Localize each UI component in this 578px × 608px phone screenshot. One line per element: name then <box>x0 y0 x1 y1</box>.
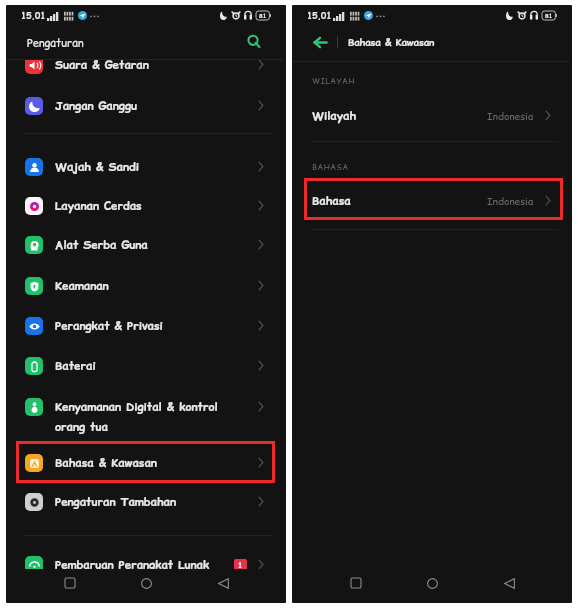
button[interactable]: Pembaruan Perangkat Lunak <box>6 545 286 569</box>
button[interactable]: Search <box>242 31 264 53</box>
button[interactable]: Back <box>310 32 330 52</box>
button[interactable]: Baterai <box>6 346 286 386</box>
button[interactable]: Jangan Ganggu <box>6 86 286 126</box>
staticText: Bahasa & Kawasan <box>55 455 157 471</box>
button[interactable]: Recent apps <box>57 570 83 596</box>
staticText: Pembaruan Perangkat Lunak <box>55 557 210 569</box>
button[interactable]: Suara & Getaran <box>6 60 286 85</box>
staticText: Kenyamanan Digital & kontrol orang tua <box>55 399 218 435</box>
staticText: Indonesia <box>487 194 534 208</box>
button[interactable]: Home <box>419 570 445 596</box>
button[interactable]: Bahasa & Kawasan <box>6 443 286 483</box>
staticText: WILAYAH <box>312 76 355 87</box>
button[interactable]: Home <box>133 570 159 596</box>
button[interactable]: Layanan Cerdas <box>6 186 286 226</box>
staticText: 15.01 <box>307 10 332 22</box>
staticText: Baterai <box>55 358 96 374</box>
staticText: Bahasa & Kawasan <box>348 35 435 49</box>
staticText: 15.01 <box>21 10 46 22</box>
staticText: Jangan Ganggu <box>55 98 137 114</box>
button[interactable]: Wajah & Sandi <box>6 147 286 187</box>
staticText: Wajah & Sandi <box>55 159 139 175</box>
button[interactable]: Pengaturan Tambahan <box>6 482 286 522</box>
button[interactable]: Wilayah <box>292 95 572 135</box>
staticText: Perangkat & Privasi <box>55 318 163 334</box>
button[interactable]: Back <box>496 570 522 596</box>
staticText: 81 <box>259 12 267 20</box>
button[interactable]: Kenyamanan Digital & kontrol orang tua <box>6 397 286 455</box>
staticText: Wilayah <box>312 108 357 124</box>
staticText: Suara & Getaran <box>55 60 149 73</box>
staticText: BAHASA <box>312 162 349 173</box>
button[interactable]: Back <box>210 570 236 596</box>
staticText: Indonesia <box>487 109 534 123</box>
button[interactable]: Perangkat & Privasi <box>6 306 286 346</box>
button[interactable]: Alat Serba Guna <box>6 225 286 265</box>
button[interactable]: Recent apps <box>343 570 369 596</box>
staticText: Pengaturan Tambahan <box>55 494 176 510</box>
staticText: 1 <box>238 561 243 569</box>
staticText: Alat Serba Guna <box>55 237 148 253</box>
staticText: 81 <box>545 12 553 20</box>
staticText: Layanan Cerdas <box>55 198 142 214</box>
staticText: Pengaturan <box>27 35 84 50</box>
staticText: Bahasa <box>312 193 351 209</box>
button[interactable]: Keamanan <box>6 266 286 306</box>
button[interactable]: Bahasa <box>292 180 572 220</box>
staticText: Keamanan <box>55 278 109 294</box>
